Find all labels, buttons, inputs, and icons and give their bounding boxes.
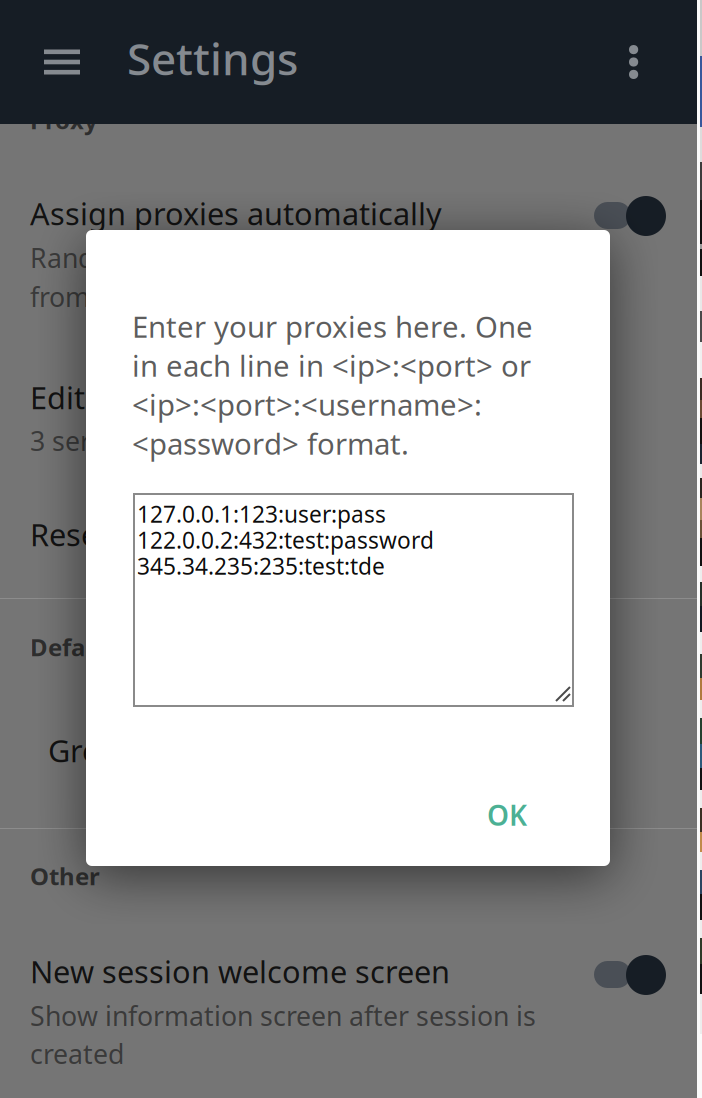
staticText: Default search engine xyxy=(30,631,290,663)
staticText: 345.34.235:235:test:tde xyxy=(137,551,385,581)
staticText: Proxy xyxy=(30,104,98,136)
staticText: Settings xyxy=(127,29,298,87)
button[interactable]: OK xyxy=(466,789,548,841)
staticText: Other xyxy=(30,860,100,892)
staticText: New session welcome screen xyxy=(30,951,450,992)
staticText: <password> format. xyxy=(132,424,409,463)
staticText: in each line in <ip>:<port> or xyxy=(132,346,531,385)
staticText: 127.0.0.1:123:user:pass xyxy=(137,499,386,529)
staticText: 3 servers xyxy=(30,423,144,458)
staticText: from the list xyxy=(30,279,182,314)
staticText: Edit proxies xyxy=(30,377,198,418)
staticText: Show information screen after session is xyxy=(30,998,536,1033)
staticText: <ip>:<port>:<username>: xyxy=(132,385,482,424)
staticText: 122.0.0.2:432:test:password xyxy=(137,525,434,555)
staticText: Enter your proxies here. One xyxy=(132,307,533,346)
button[interactable]: Navigation menu xyxy=(20,24,104,100)
staticText: Reset proxies xyxy=(30,514,222,555)
staticText: created xyxy=(30,1036,124,1071)
staticText: Green xyxy=(48,730,135,771)
staticText: Randomly assign proxies to sessions xyxy=(30,240,487,275)
button[interactable]: More options xyxy=(601,24,667,100)
staticText: Assign proxies automatically xyxy=(30,193,442,234)
staticText: OK xyxy=(487,796,527,834)
